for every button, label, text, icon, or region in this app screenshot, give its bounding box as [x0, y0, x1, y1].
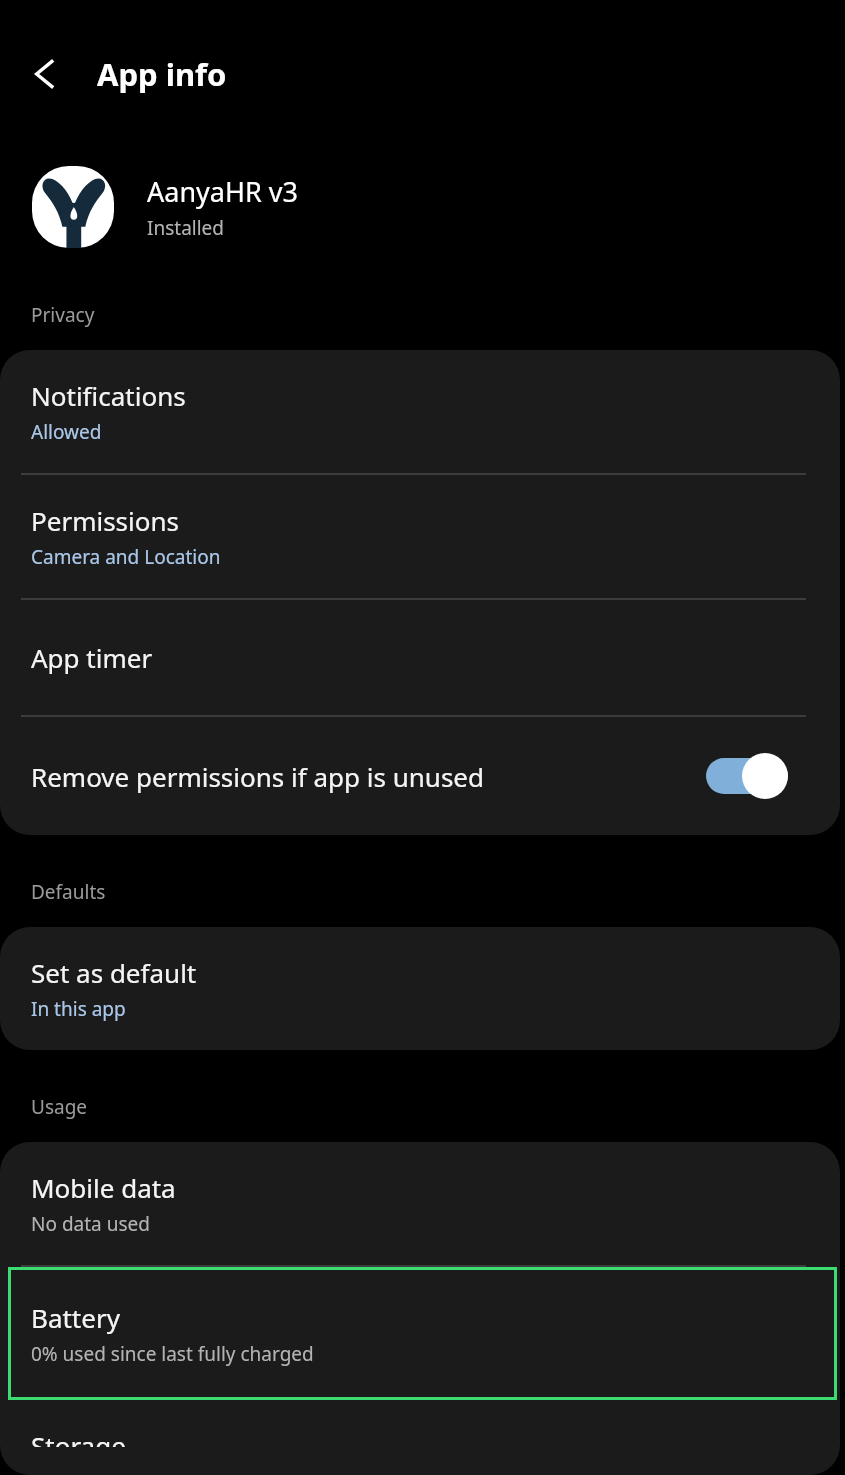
staticText: Installed	[147, 215, 225, 241]
staticText: Camera and Location	[31, 544, 221, 570]
staticText: Battery	[31, 1300, 120, 1335]
staticText: App timer	[31, 640, 153, 675]
staticText: Allowed	[31, 419, 102, 445]
staticText: In this app	[31, 996, 126, 1022]
button[interactable]: Storage	[0, 1400, 840, 1475]
button[interactable]: Notifications	[0, 350, 840, 473]
staticText: AanyaHR v3	[147, 173, 298, 210]
button[interactable]: Set as default	[0, 927, 840, 1050]
staticText: Notifications	[31, 378, 186, 413]
button[interactable]: App timer	[0, 600, 840, 715]
staticText: Set as default	[31, 955, 197, 990]
staticText: Remove permissions if app is unused	[31, 759, 484, 794]
button[interactable]: Battery	[8, 1267, 837, 1400]
staticText: Mobile data	[31, 1170, 176, 1205]
staticText: Permissions	[31, 503, 180, 538]
staticText: App info	[97, 53, 227, 95]
staticText: Storage	[31, 1428, 126, 1447]
staticText: Privacy	[31, 302, 95, 328]
button[interactable]: AanyaHR v3	[0, 148, 845, 266]
button[interactable]: Back	[14, 42, 78, 106]
staticText: Usage	[31, 1094, 88, 1120]
button[interactable]: Remove permissions if app is unused	[0, 717, 840, 835]
staticText: No data used	[31, 1211, 150, 1237]
staticText: 0% used since last fully charged	[31, 1341, 314, 1367]
button[interactable]: Mobile data	[0, 1142, 840, 1265]
staticText: Defaults	[31, 879, 106, 905]
button[interactable]: Permissions	[0, 475, 840, 598]
